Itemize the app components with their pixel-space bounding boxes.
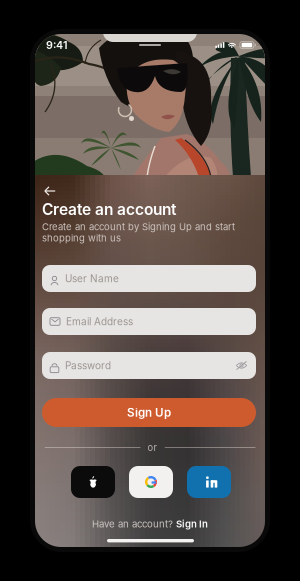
staticText: Sign In bbox=[176, 518, 208, 530]
button[interactable]: Sign Up bbox=[42, 398, 256, 427]
button[interactable]: Password bbox=[42, 352, 256, 379]
button[interactable]: Sign up with Google bbox=[129, 466, 173, 498]
staticText: Create an account bbox=[42, 200, 176, 219]
staticText: Have an account? bbox=[92, 518, 173, 530]
staticText: Password bbox=[65, 359, 111, 372]
staticText: or bbox=[148, 442, 158, 453]
button[interactable]: Back bbox=[41, 184, 59, 198]
staticText: 9:41 bbox=[46, 38, 68, 51]
button[interactable]: Have an account? bbox=[35, 518, 265, 530]
button[interactable]: Email Address bbox=[42, 308, 256, 335]
button[interactable]: User Name bbox=[42, 265, 256, 292]
staticText: User Name bbox=[65, 272, 119, 285]
button[interactable]: Sign up with Apple bbox=[71, 466, 115, 498]
staticText: Sign Up bbox=[127, 405, 171, 419]
staticText: Email Address bbox=[66, 315, 133, 328]
button[interactable]: Sign up with LinkedIn bbox=[187, 466, 231, 498]
staticText: Create an account by Signing Up and star… bbox=[42, 221, 235, 244]
